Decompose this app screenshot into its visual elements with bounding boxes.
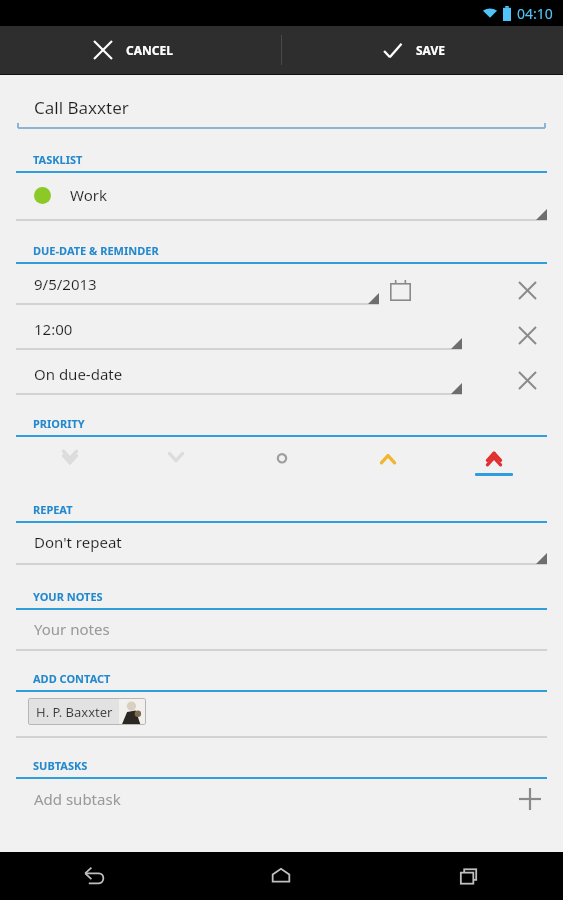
button[interactable]: H. P. Baxxter [16,695,547,738]
button[interactable]: Back [0,852,187,900]
button[interactable]: Call Baxxter [16,91,547,130]
button[interactable]: Clear [509,272,545,308]
staticText: YOUR NOTES [33,589,103,604]
button[interactable]: Clear [509,362,545,398]
staticText: On due-date [34,364,123,384]
staticText: 9/5/2013 [34,274,97,294]
staticText: Don't repeat [34,532,122,552]
button[interactable]: 12:00 [16,315,462,354]
staticText: Add subtask [34,789,513,809]
staticText: TASKLIST [33,152,83,167]
button[interactable]: Lowest priority [16,440,123,466]
staticText: DUE-DATE & REMINDER [33,243,159,258]
button[interactable]: SAVE [282,26,563,74]
button[interactable]: Don't repeat [16,526,547,569]
staticText: 04:10 [517,4,553,23]
staticText: PRIORITY [33,416,85,431]
staticText: CANCEL [126,42,173,58]
button[interactable]: On due-date [16,360,462,399]
button[interactable]: 9/5/2013 [16,270,379,309]
button[interactable]: Your notes [16,613,547,651]
button[interactable]: High priority [335,440,441,466]
staticText: Your notes [34,619,110,639]
button[interactable]: Clear [509,317,545,353]
button[interactable]: Low priority [123,440,229,466]
button[interactable]: Normal priority [229,440,335,466]
button[interactable]: H. P. Baxxter [28,698,146,725]
staticText: 12:00 [34,319,73,339]
other: Add subtask [513,782,547,816]
staticText: H. P. Baxxter [36,703,113,721]
button[interactable]: CANCEL [0,26,281,74]
button[interactable]: Recents [375,852,563,900]
staticText: ADD CONTACT [33,671,111,686]
staticText: SUBTASKS [33,758,88,773]
button[interactable]: Highest priority [441,440,547,476]
staticText: SAVE [416,42,445,58]
button[interactable]: Home [187,852,375,900]
staticText: Call Baxxter [34,96,129,119]
button[interactable]: Work [16,176,547,225]
staticText: REPEAT [33,502,73,517]
button[interactable]: Pick date [385,275,415,305]
staticText: Work [70,185,107,205]
button[interactable]: Add subtask [16,782,547,816]
